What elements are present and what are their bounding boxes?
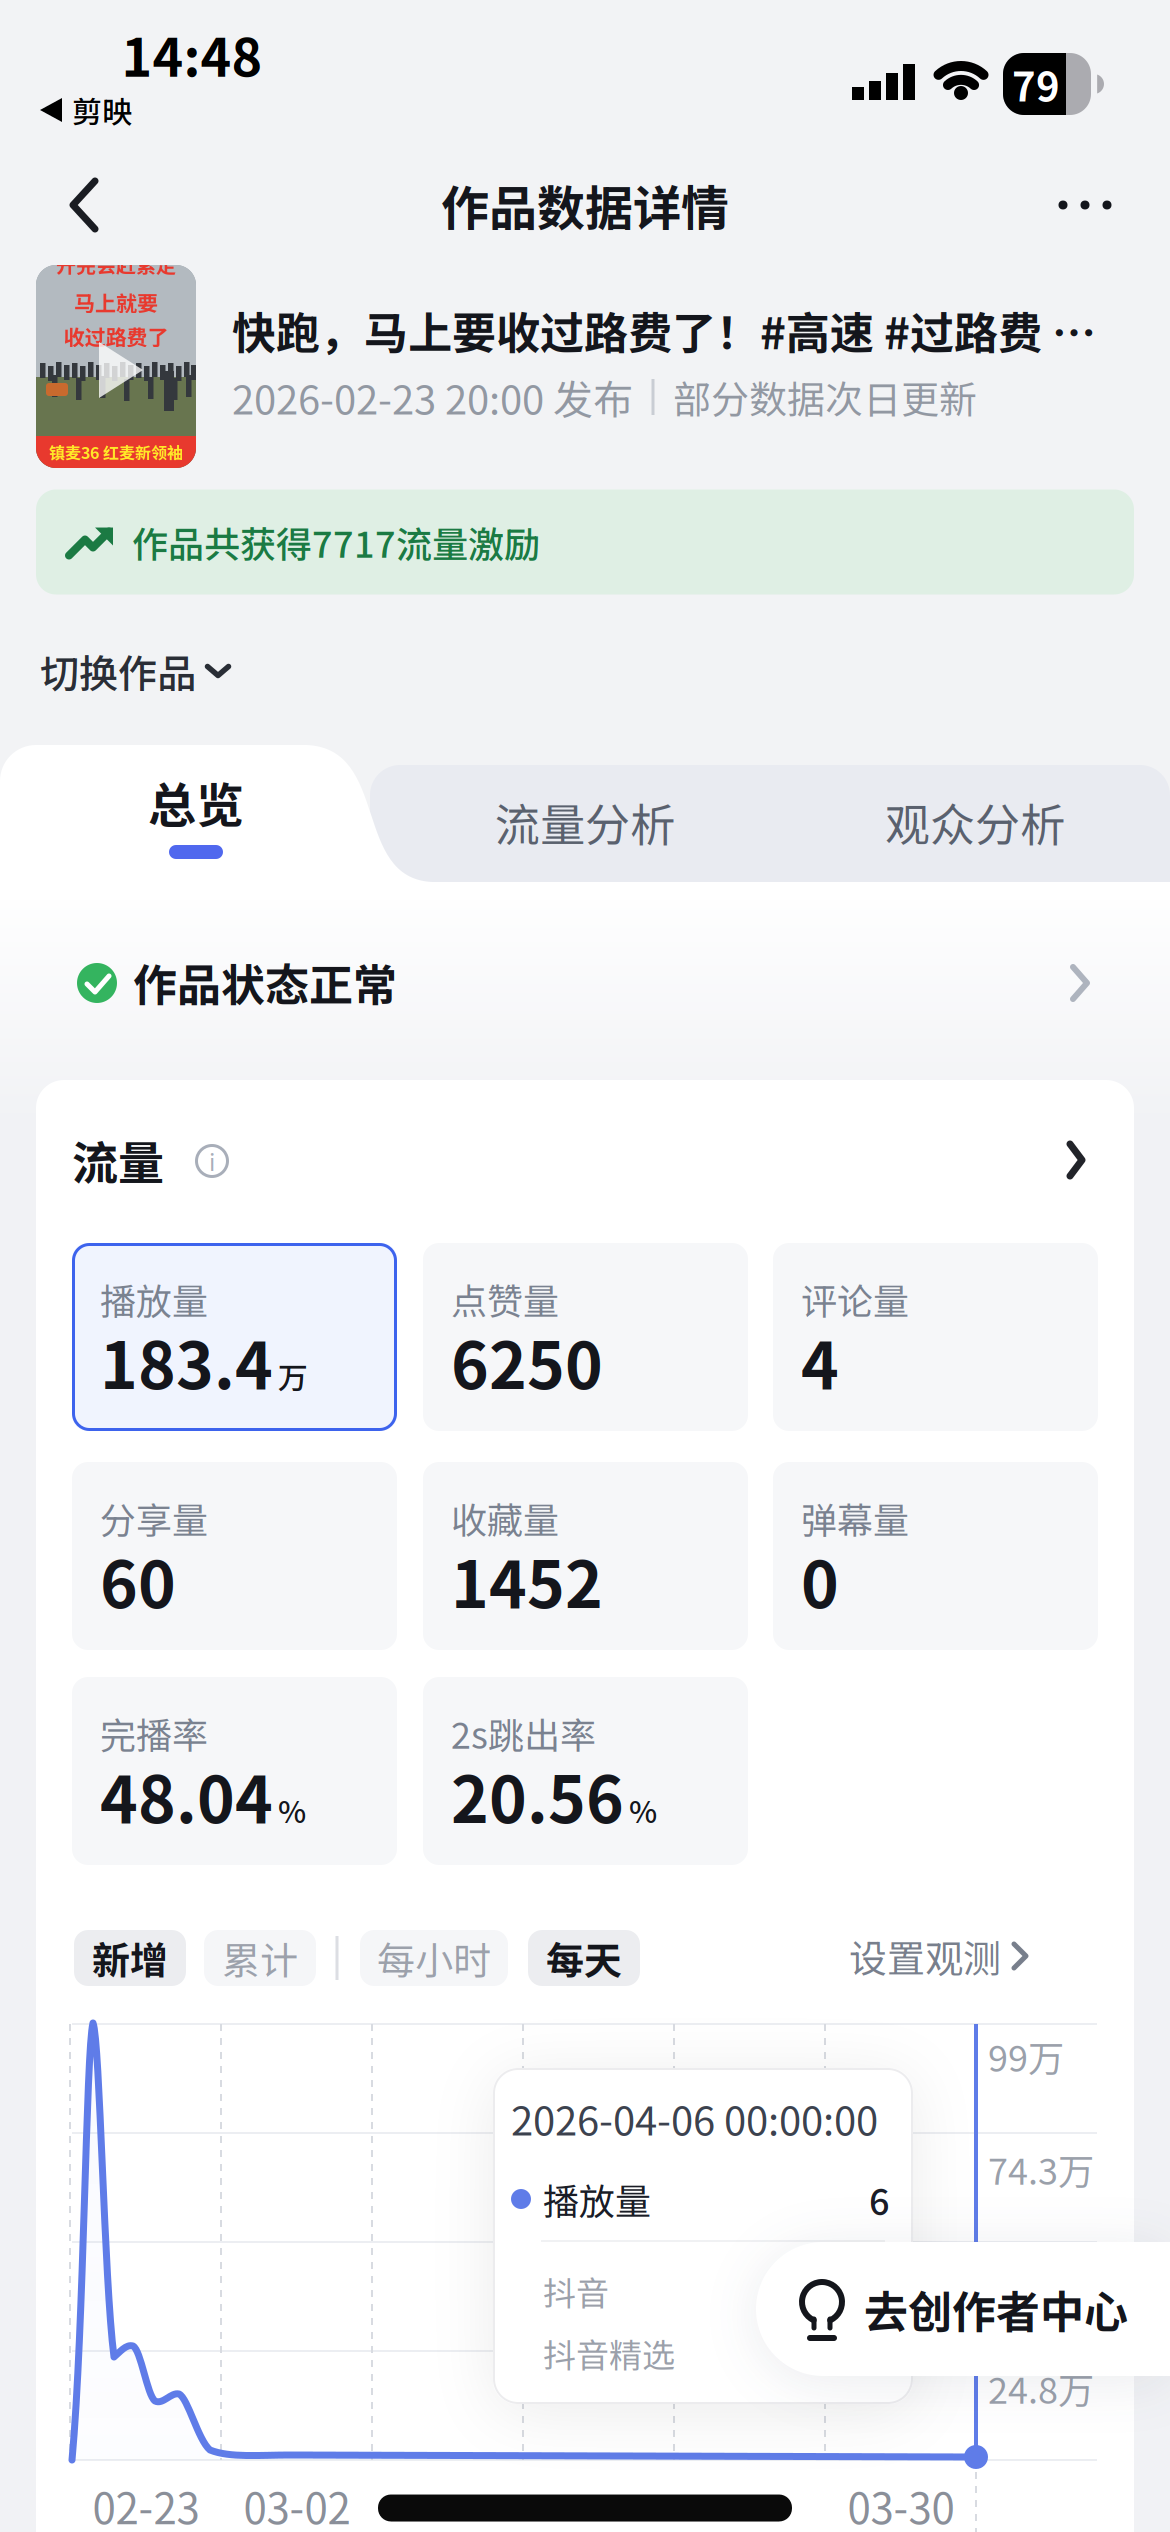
staticText: 03-02	[243, 2476, 350, 2532]
staticText: 1452	[451, 1534, 603, 1626]
button[interactable]: 每小时	[360, 1930, 508, 1986]
staticText: 播放量	[543, 2173, 651, 2225]
staticText: 2s跳出率	[451, 1707, 596, 1759]
staticText: 开完会赶紧走	[56, 249, 176, 278]
button[interactable]: 观众分析	[835, 772, 1115, 872]
staticText: 14:48	[121, 16, 262, 92]
button[interactable]: 查看流量详情	[1046, 1130, 1106, 1190]
button[interactable]: 流量分析	[445, 772, 725, 872]
button[interactable]: 每天	[528, 1930, 640, 1986]
staticText: 每小时	[377, 1930, 491, 1985]
button[interactable]: 视频	[36, 265, 196, 468]
staticText: 剪映	[72, 88, 132, 132]
staticText: %	[278, 1788, 306, 1831]
staticText: 作品共获得7717流量激励	[132, 516, 540, 568]
staticText: 马上就要	[74, 287, 158, 317]
button[interactable]: 收藏量	[423, 1462, 748, 1650]
staticText: 74.3万	[988, 2143, 1094, 2195]
staticText: %	[629, 1788, 657, 1831]
button[interactable]: 新增	[74, 1930, 186, 1986]
button[interactable]: 更多	[1040, 175, 1130, 235]
button[interactable]: 去创作者中心	[756, 2242, 1170, 2376]
button[interactable]: 点赞量	[423, 1243, 748, 1431]
staticText: 点赞量	[451, 1273, 559, 1325]
staticText: 设置观测	[849, 1928, 1001, 1983]
staticText: 镇麦36 红麦新领袖	[49, 440, 183, 464]
staticText: 流量	[72, 1127, 164, 1193]
staticText: 每天	[546, 1930, 622, 1985]
staticText: 部分数据次日更新	[673, 369, 977, 424]
staticText: 收过路费了	[63, 321, 168, 351]
button[interactable]: 作品状态正常	[18, 931, 1152, 1035]
staticText: 20.56	[451, 1749, 624, 1841]
staticText: 作品状态正常	[133, 950, 397, 1014]
button[interactable]: 弹幕量	[773, 1462, 1098, 1650]
staticText: 79	[1012, 55, 1060, 113]
staticText: 万	[278, 1354, 308, 1397]
staticText: 累计	[222, 1930, 298, 1985]
staticText: 评论量	[801, 1273, 909, 1325]
button[interactable]: 总览	[96, 772, 296, 872]
staticText: 收藏量	[451, 1492, 559, 1544]
staticText: 播放量	[100, 1273, 208, 1325]
staticText: 99万	[988, 2030, 1064, 2082]
staticText: 24.8万	[988, 2362, 1094, 2414]
button[interactable]: 评论量	[773, 1243, 1098, 1431]
staticText: 2026-02-23 20:00 发布	[232, 368, 633, 426]
button[interactable]: 累计	[204, 1930, 316, 1986]
staticText: 作品数据详情	[441, 170, 729, 240]
button[interactable]: 设置观测	[820, 1926, 1060, 1986]
staticText: 快跑，马上要收过路费了！#高速 #过路费 …	[232, 298, 1096, 362]
staticText: 60	[100, 1534, 176, 1626]
staticText: 4	[801, 1315, 839, 1407]
staticText: 总览	[148, 767, 244, 837]
staticText: 183.4	[100, 1315, 273, 1407]
button[interactable]: 返回	[44, 165, 124, 245]
button[interactable]: 切换作品	[40, 643, 290, 699]
staticText: 新增	[92, 1930, 168, 1985]
button[interactable]: 说明	[190, 1139, 234, 1183]
staticText: 切换作品	[40, 643, 196, 699]
staticText: 48.04	[100, 1749, 273, 1841]
staticText: 02-23	[92, 2476, 199, 2532]
button[interactable]: 完播率	[72, 1677, 397, 1865]
staticText: 完播率	[100, 1707, 208, 1759]
staticText: 分享量	[100, 1492, 208, 1544]
staticText: 流量分析	[495, 789, 675, 855]
button[interactable]: 播放量	[72, 1243, 397, 1431]
button[interactable]: 流量激励	[36, 489, 1134, 594]
button[interactable]: 2s跳出率	[423, 1677, 748, 1865]
button[interactable]: 分享量	[72, 1462, 397, 1650]
staticText: 03-30	[847, 2476, 954, 2532]
staticText: 6	[869, 2173, 890, 2225]
staticText: 观众分析	[885, 789, 1065, 855]
staticText: 弹幕量	[801, 1492, 909, 1544]
staticText: 0	[801, 1534, 839, 1626]
staticText: 6250	[451, 1315, 603, 1407]
staticText: 2026-04-06 00:00:00	[511, 2089, 878, 2147]
staticText: 抖音精选	[543, 2329, 675, 2377]
staticText: i	[209, 1144, 215, 1178]
staticText: 抖音	[543, 2267, 609, 2315]
staticText: 去创作者中心	[864, 2277, 1128, 2341]
button[interactable]: 返回剪映	[40, 90, 190, 130]
